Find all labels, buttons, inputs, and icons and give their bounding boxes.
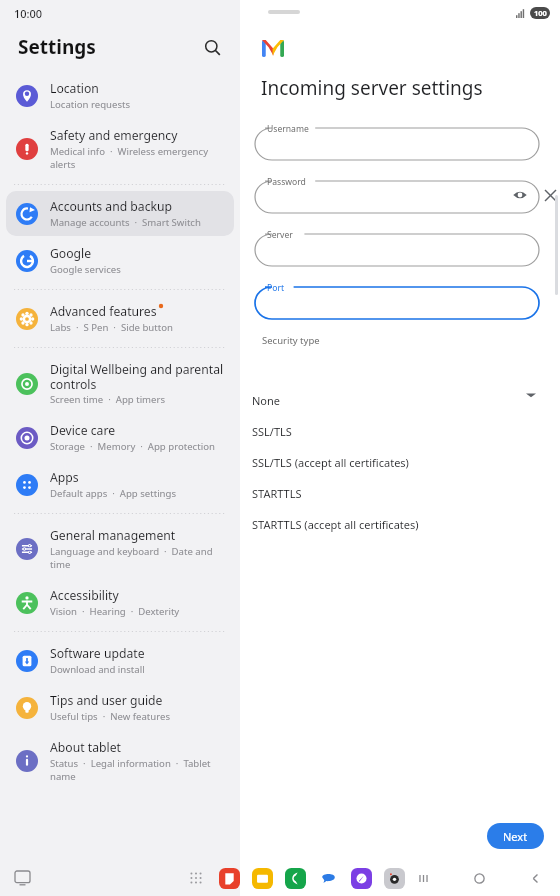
button[interactable]: Advanced features: [6, 296, 234, 341]
staticText: Manage accounts · Smart Switch: [50, 216, 201, 229]
staticText: 100: [534, 8, 547, 18]
button[interactable]: Port: [253, 281, 541, 321]
button[interactable]: STARTTLS (accept all certificates): [244, 509, 519, 540]
staticText: Safety and emergency: [50, 127, 178, 144]
button[interactable]: Back: [524, 867, 546, 889]
button[interactable]: App: [383, 867, 405, 889]
staticText: Tips and user guide: [50, 692, 163, 709]
staticText: Software update: [50, 645, 145, 662]
staticText: 10:00: [14, 6, 43, 21]
staticText: Security type: [262, 334, 320, 347]
button[interactable]: Next: [487, 823, 544, 849]
button[interactable]: Clear: [541, 183, 560, 207]
button[interactable]: Digital Wellbeing and parental controls: [6, 354, 234, 413]
staticText: Location requests: [50, 98, 131, 111]
staticText: STARTTLS (accept all certificates): [252, 517, 419, 532]
button[interactable]: Accessibility: [6, 580, 234, 625]
staticText: Location: [50, 80, 99, 97]
button[interactable]: Apps: [6, 462, 234, 507]
button[interactable]: Server: [253, 228, 541, 268]
staticText: SSL/TLS (accept all certificates): [252, 455, 409, 470]
staticText: Medical info · Wireless emergency alerts: [50, 145, 226, 171]
staticText: Server: [267, 229, 293, 241]
button[interactable]: Home: [468, 867, 490, 889]
button[interactable]: App: [218, 867, 240, 889]
staticText: Device care: [50, 422, 116, 439]
staticText: Language and keyboard · Date and time: [50, 545, 226, 571]
staticText: Useful tips · New features: [50, 710, 171, 723]
button[interactable]: App: [251, 867, 273, 889]
button[interactable]: Google: [6, 238, 234, 283]
staticText: Digital Wellbeing and parental controls: [50, 361, 226, 392]
staticText: SSL/TLS: [252, 424, 292, 439]
button[interactable]: Tips and user guide: [6, 685, 234, 730]
button[interactable]: Device care: [6, 415, 234, 460]
button[interactable]: Username: [253, 122, 541, 162]
staticText: Accessibility: [50, 587, 119, 604]
staticText: Advanced features: [50, 303, 157, 320]
button[interactable]: Search: [198, 33, 226, 61]
staticText: Username: [267, 123, 309, 135]
button[interactable]: SSL/TLS: [244, 416, 519, 447]
button[interactable]: App: [284, 867, 306, 889]
staticText: Next: [503, 829, 528, 844]
staticText: Labs · S Pen · Side button: [50, 321, 173, 334]
staticText: Google: [50, 245, 92, 262]
staticText: Screen time · App timers: [50, 393, 166, 406]
button[interactable]: Password: [253, 175, 541, 215]
staticText: None: [252, 393, 281, 408]
staticText: Vision · Hearing · Dexterity: [50, 605, 180, 618]
staticText: Port: [267, 282, 285, 294]
staticText: Download and install: [50, 663, 145, 676]
staticText: Default apps · App settings: [50, 487, 177, 500]
button[interactable]: None: [244, 385, 519, 416]
button[interactable]: STARTTLS: [244, 478, 519, 509]
staticText: Google services: [50, 263, 121, 276]
button[interactable]: Safety and emergency: [6, 120, 234, 178]
button[interactable]: App: [317, 867, 339, 889]
staticText: Settings: [18, 34, 96, 60]
staticText: Incoming server settings: [261, 75, 483, 101]
staticText: Apps: [50, 469, 79, 486]
button[interactable]: Software update: [6, 638, 234, 683]
button[interactable]: About tablet: [6, 732, 234, 790]
button[interactable]: Recent screen: [6, 862, 38, 894]
button[interactable]: App: [350, 867, 372, 889]
button[interactable]: Recents: [412, 867, 434, 889]
button[interactable]: General management: [6, 520, 234, 578]
button[interactable]: Accounts and backup: [6, 191, 234, 236]
staticText: Storage · Memory · App protection: [50, 440, 215, 453]
staticText: Password: [267, 176, 306, 188]
button[interactable]: All apps: [185, 867, 207, 889]
other: Show password: [513, 188, 527, 202]
button[interactable]: SSL/TLS (accept all certificates): [244, 447, 519, 478]
staticText: Status · Legal information · Tablet name: [50, 757, 226, 783]
staticText: Accounts and backup: [50, 198, 173, 215]
button[interactable]: Location: [6, 73, 234, 118]
staticText: General management: [50, 527, 176, 544]
staticText: STARTTLS: [252, 486, 302, 501]
staticText: About tablet: [50, 739, 121, 756]
